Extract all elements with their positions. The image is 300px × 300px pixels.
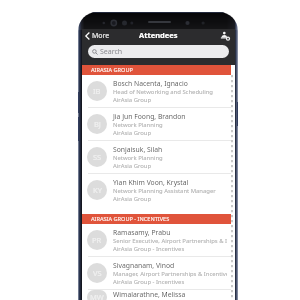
staticText: Network Planning [113,154,163,162]
staticText: AirAsia Group [113,162,152,170]
staticText: VS [93,268,102,278]
staticText: Network Planning Assistant Manager [113,187,216,195]
button[interactable]: VS [82,257,231,289]
button[interactable]: More [84,30,111,42]
staticText: Network Planning [113,121,163,129]
staticText: Manager, Airport Partnerships & Incentiv… [113,270,227,278]
staticText: Bosch Nacenta, Ignacio [113,79,188,88]
staticText: Senior Executive, Airport Partnerships &… [113,237,227,245]
staticText: KY [93,185,102,195]
staticText: AirAsia Group - Incentives [113,245,185,253]
staticText: Ramasamy, Prabu [113,228,171,237]
button[interactable]: SS [82,141,231,173]
staticText: Wimalarathne, Melissa [113,290,186,299]
button[interactable]: PR [82,224,231,256]
staticText: AirAsia Group [113,129,152,137]
staticText: AirAsia Group [113,96,152,104]
staticText: AirAsia Group [113,195,152,203]
staticText: AIRASIA GROUP - INCENTIVES [91,215,170,223]
staticText: MW [90,292,104,300]
staticText: Sonjaisuk, Silah [113,145,163,154]
staticText: Search [100,47,123,57]
staticText: BJ [94,119,101,129]
staticText: Attendees [139,30,178,40]
staticText: AirAsia Group - Incentives [113,278,185,286]
staticText: SS [93,152,102,162]
staticText: PR [92,235,102,245]
button[interactable]: Add attendee [219,30,231,42]
staticText: Head of Networking and Scheduling [113,88,213,96]
button[interactable]: Search [88,45,229,58]
button[interactable]: MW [82,290,231,300]
staticText: IB [93,86,101,96]
staticText: Yian Khim Voon, Krystal [113,178,189,187]
button[interactable]: IB [82,75,231,107]
staticText: More [92,31,110,41]
button[interactable]: KY [82,174,231,206]
staticText: AIRASIA GROUP [91,66,133,74]
staticText: Jia Jun Foong, Brandon [113,112,186,121]
staticText: Sivagnanam, Vinod [113,261,175,270]
button[interactable]: BJ [82,108,231,140]
